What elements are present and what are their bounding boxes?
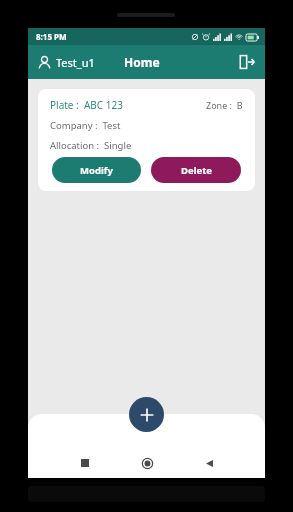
button[interactable]: Add xyxy=(129,397,164,432)
staticText: Plate : ABC 123 xyxy=(50,98,123,112)
button[interactable]: Test_u1 xyxy=(36,54,95,71)
staticText: Test_u1 xyxy=(56,55,95,70)
button[interactable]: Modify xyxy=(52,157,141,183)
staticText: Allocation : Single xyxy=(50,139,132,152)
button[interactable]: Back xyxy=(178,448,240,478)
staticText: Modify xyxy=(80,164,113,177)
staticText: Delete xyxy=(181,164,212,177)
staticText: Home xyxy=(124,54,160,70)
button[interactable]: Logout xyxy=(237,52,257,72)
button[interactable]: Plate : ABC 123 xyxy=(38,89,255,191)
button[interactable]: Delete xyxy=(151,157,241,183)
staticText: Zone : B xyxy=(206,99,243,111)
button[interactable]: Home xyxy=(116,448,178,478)
staticText: Company : Test xyxy=(50,119,121,132)
staticText: 8:15 PM xyxy=(36,31,67,42)
button[interactable]: Recents xyxy=(54,448,116,478)
